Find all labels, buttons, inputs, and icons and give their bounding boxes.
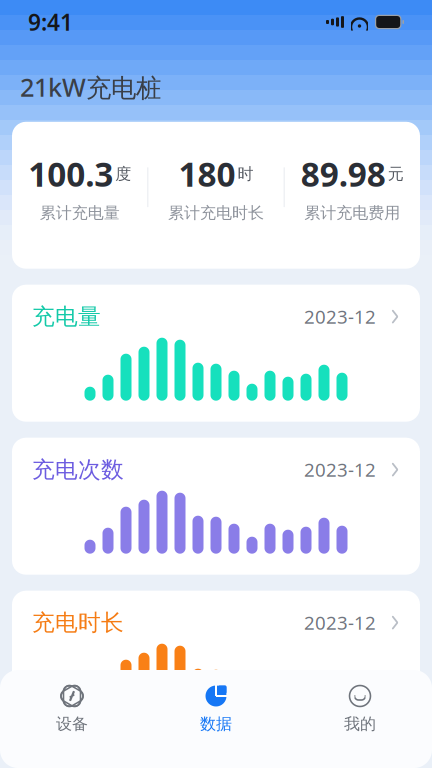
staticText: 设备: [56, 714, 88, 734]
staticText: 180: [178, 152, 235, 196]
button[interactable]: 充电时长: [12, 591, 420, 728]
button[interactable]: 设备: [0, 674, 144, 742]
staticText: 100.3: [28, 152, 113, 196]
staticText: 89.98: [301, 152, 386, 196]
staticText: 21kW充电桩: [20, 70, 161, 104]
staticText: 2023-12: [304, 457, 376, 482]
staticText: 元: [388, 164, 404, 184]
staticText: 我的: [344, 714, 376, 734]
staticText: 充电量: [32, 303, 101, 330]
staticText: 2023-12: [304, 610, 376, 635]
button[interactable]: 充电次数: [12, 438, 420, 575]
button[interactable]: 数据: [144, 674, 288, 742]
button[interactable]: 我的: [288, 674, 432, 742]
staticText: 充电时长: [32, 609, 124, 636]
staticText: 充电次数: [32, 456, 124, 483]
staticText: 9:41: [28, 7, 73, 37]
staticText: 累计充电费用: [304, 203, 400, 223]
button[interactable]: 充电量: [12, 285, 420, 422]
staticText: 时: [237, 164, 253, 184]
staticText: 累计充电时长: [168, 203, 264, 223]
staticText: 2023-12: [304, 304, 376, 329]
staticText: 累计充电量: [40, 203, 120, 223]
staticText: 数据: [200, 714, 232, 734]
staticText: 度: [115, 164, 131, 184]
